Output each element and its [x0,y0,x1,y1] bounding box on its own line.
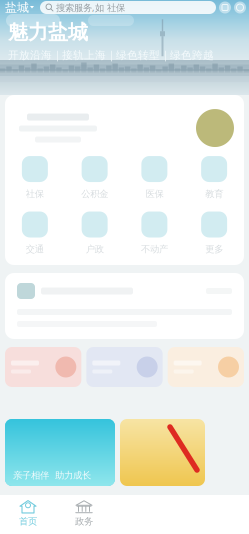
staticText: 政务 [75,516,93,527]
button[interactable] [168,347,244,387]
staticText: 公积金 [81,188,108,199]
button[interactable]: 医保 [124,156,184,199]
staticText: 更多 [205,243,223,255]
button[interactable]: 教育 [184,156,244,199]
button[interactable]: 搜索服务,如 社保 [40,1,216,14]
button[interactable] [120,419,205,486]
staticText: 魅力盐城 [8,20,88,45]
button[interactable]: 公积金 [65,156,124,199]
button[interactable]: 户政 [65,211,124,255]
button[interactable]: 交通 [5,211,65,255]
staticText: 交通 [26,243,44,255]
staticText: 亲子相伴 助力成长 [13,469,91,481]
staticText: 首页 [19,516,37,527]
staticText: 搜索服务,如 社保 [56,1,125,14]
staticText: 盐城 [5,0,29,15]
staticText: 社保 [26,188,44,199]
button[interactable] [86,347,163,387]
staticText: 教育 [205,188,223,199]
staticText: 户政 [86,243,104,255]
staticText: 不动产 [141,243,168,255]
staticText: 医保 [145,188,163,199]
button[interactable]: 盐城 [3,1,37,14]
button[interactable]: 社保 [5,156,65,199]
button[interactable] [5,347,81,387]
button[interactable]: 亲子相伴 助力成长 [5,419,115,486]
button[interactable]: Scan [219,1,231,13]
button[interactable]: 更多 [184,211,244,255]
staticText: 开放沿海｜接轨上海｜绿色转型｜绿色跨越 [8,49,214,62]
button[interactable]: 不动产 [124,211,184,255]
button[interactable]: Messages [234,1,246,13]
button[interactable]: 首页 [0,495,56,534]
button[interactable]: 政务 [56,495,112,534]
